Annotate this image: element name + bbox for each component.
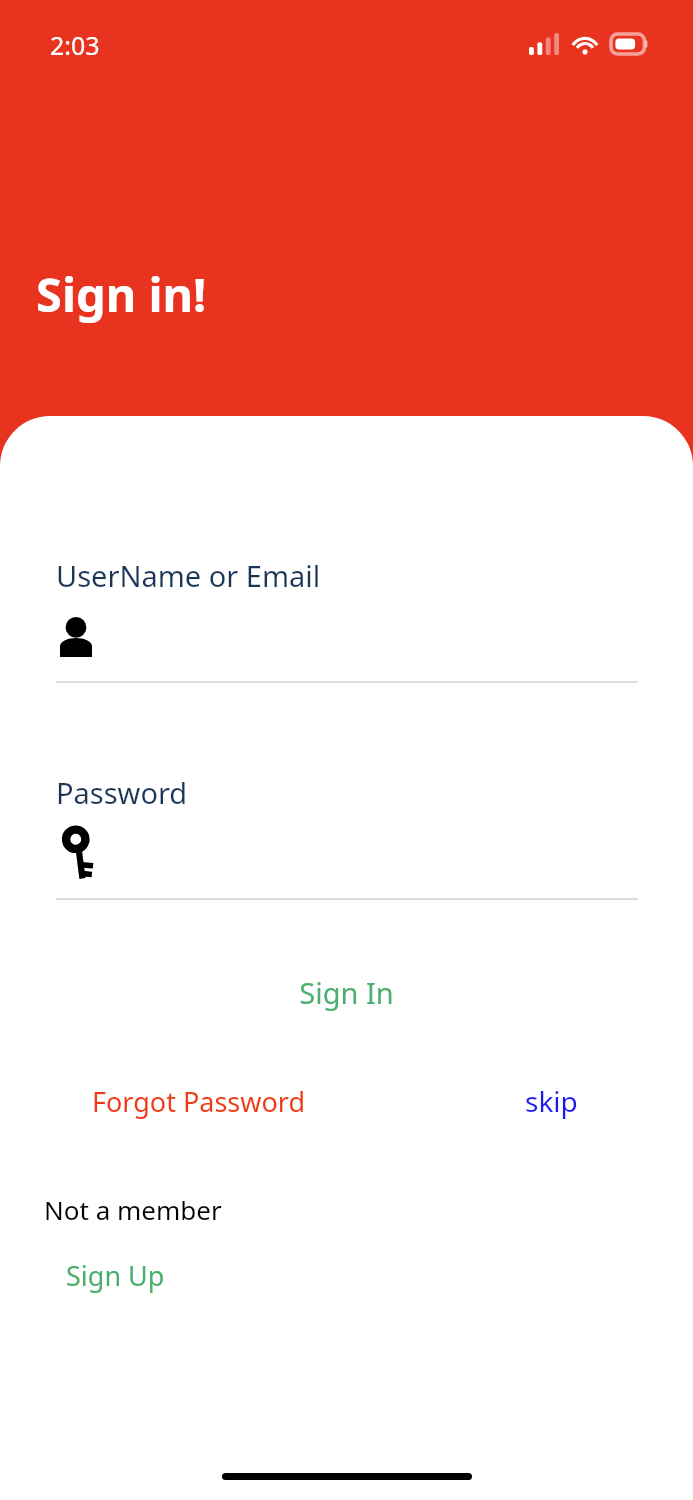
staticText: skip [525,1082,578,1120]
staticText: Sign in! [36,262,207,326]
other: Password [47,822,111,886]
button[interactable]: Sign Up [66,1253,165,1298]
button[interactable]: Sign In [0,967,693,1018]
staticText: Sign Up [66,1257,165,1294]
staticText: Password [56,773,188,812]
staticText: Sign In [299,973,394,1012]
button[interactable]: skip [525,1076,578,1126]
staticText: 2:03 [50,28,100,62]
staticText: UserName or Email [56,556,321,595]
staticText: Forgot Password [92,1083,306,1120]
button[interactable]: Forgot Password [92,1077,306,1126]
staticText: Not a member [44,1192,222,1227]
other: User [56,617,96,657]
